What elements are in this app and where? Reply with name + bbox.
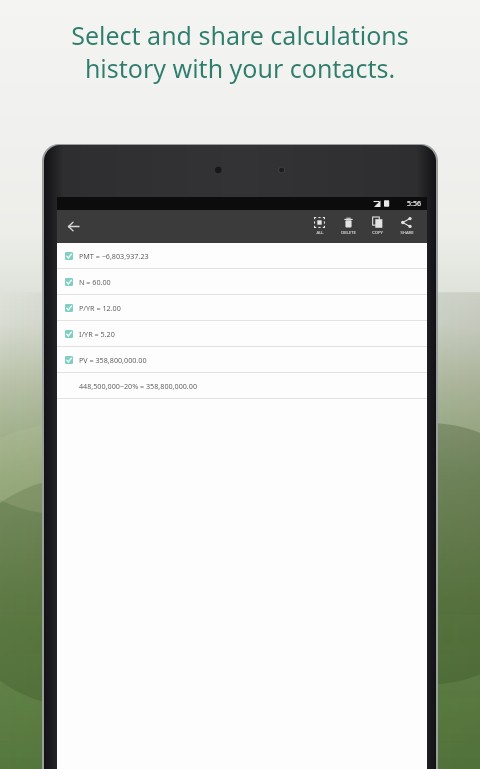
staticText: SHARE <box>400 230 414 236</box>
button[interactable]: I/YR = 5.20 <box>57 321 427 347</box>
staticText: 448,500,000−20% = 358,800,000.00 <box>79 381 198 391</box>
staticText: ALL <box>316 230 324 236</box>
button[interactable]: P/YR = 12.00 <box>57 295 427 321</box>
button[interactable]: SHARE <box>392 210 421 243</box>
staticText: DELETE <box>341 230 356 236</box>
staticText: PV = 358,800,000.00 <box>79 355 147 365</box>
button[interactable]: Back <box>57 210 90 243</box>
button[interactable]: N = 60.00 <box>57 269 427 295</box>
staticText: COPY <box>372 230 383 236</box>
button[interactable]: 448,500,000−20% = 358,800,000.00 <box>57 373 427 399</box>
staticText: 5:56 <box>407 199 421 209</box>
staticText: PMT = −6,803,937.23 <box>79 251 149 261</box>
button[interactable]: PMT = −6,803,937.23 <box>57 243 427 269</box>
button[interactable]: PV = 358,800,000.00 <box>57 347 427 373</box>
button[interactable]: ALL <box>305 210 334 243</box>
staticText: I/YR = 5.20 <box>79 329 115 339</box>
staticText: Select and share calculations history wi… <box>71 18 409 85</box>
staticText: N = 60.00 <box>79 277 111 287</box>
button[interactable]: DELETE <box>334 210 363 243</box>
button[interactable]: COPY <box>363 210 392 243</box>
staticText: P/YR = 12.00 <box>79 303 121 313</box>
